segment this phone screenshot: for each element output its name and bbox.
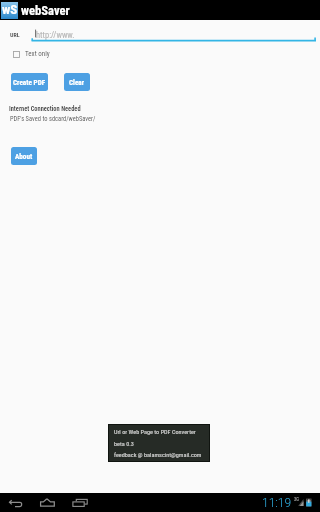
staticText: PDF's Saved to sdcard/webSaver/ — [10, 115, 96, 123]
staticText: Create PDF — [13, 78, 46, 86]
staticText: webSaver — [21, 3, 70, 18]
button[interactable]: Clear — [64, 73, 90, 91]
other: Battery — [306, 498, 313, 508]
button[interactable]: Create PDF — [11, 73, 48, 91]
button[interactable]: Back — [7, 497, 23, 511]
staticText: 11:19 — [262, 496, 292, 510]
button[interactable]: About — [11, 147, 37, 165]
staticText: Url or Web Page to PDF Converter — [114, 428, 196, 435]
staticText: http://www. — [36, 30, 75, 40]
staticText: URL — [10, 31, 20, 38]
staticText: Text only — [25, 50, 50, 58]
staticText: feedback @ balamscint@gmail.com — [114, 451, 202, 458]
button[interactable]: URL input — [33, 27, 316, 41]
button[interactable]: Home — [39, 497, 56, 511]
staticText: 3G — [294, 497, 299, 502]
button[interactable]: Recent apps — [71, 497, 89, 511]
other: Signal strength — [298, 498, 305, 508]
staticText: Clear — [69, 78, 85, 86]
staticText: Internet Connection Needed — [9, 105, 81, 113]
button[interactable]: Text only — [13, 48, 50, 60]
staticText: wS — [2, 2, 18, 17]
staticText: About — [15, 152, 33, 160]
staticText: beta 0.3 — [114, 440, 134, 447]
